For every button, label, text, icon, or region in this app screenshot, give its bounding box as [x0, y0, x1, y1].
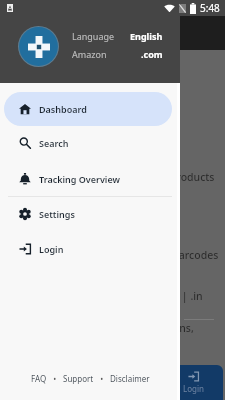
staticText: Search	[39, 137, 69, 149]
staticText: Language	[72, 30, 115, 42]
staticText: ions,	[170, 321, 194, 335]
staticText: •	[47, 373, 63, 384]
staticText: es | .in	[168, 289, 203, 303]
staticText: English	[130, 30, 163, 42]
button[interactable]: Dashboard	[4, 92, 172, 126]
button[interactable]: Disclaimer	[110, 373, 150, 384]
staticText: Login	[39, 243, 64, 255]
staticText: Barcodes	[172, 248, 219, 262]
staticText: Tracking Overview	[39, 173, 120, 185]
button[interactable]: FAQ	[31, 373, 47, 384]
button[interactable]: Login	[4, 232, 172, 266]
button[interactable]: Settings	[4, 197, 172, 231]
staticText: •	[94, 373, 110, 384]
button[interactable]: Search	[4, 126, 172, 160]
button[interactable]: Tracking Overview	[4, 162, 172, 196]
staticText: Login	[183, 383, 204, 394]
staticText: Products	[170, 170, 215, 184]
button[interactable]: Login	[163, 365, 223, 400]
staticText: Amazon	[72, 48, 107, 60]
staticText: Settings	[39, 208, 75, 220]
staticText: 5:48	[200, 1, 220, 15]
staticText: .com	[141, 48, 163, 60]
button[interactable]: Support	[63, 373, 94, 384]
staticText: Dashboard	[39, 103, 87, 115]
